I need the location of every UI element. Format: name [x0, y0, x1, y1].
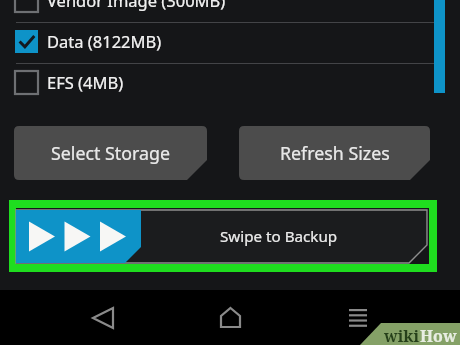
- button[interactable]: Vendor Image (300MB): [0, 0, 460, 20]
- button[interactable]: Swipe to Backup: [16, 210, 427, 263]
- staticText: Vendor Image (300MB): [47, 0, 226, 11]
- staticText: Swipe to Backup: [220, 226, 338, 247]
- button[interactable]: Refresh Sizes: [239, 126, 430, 180]
- staticText: EFS (4MB): [47, 71, 124, 93]
- button[interactable]: Home: [190, 290, 270, 345]
- button[interactable]: Recent apps: [318, 290, 398, 345]
- staticText: Select Storage: [51, 141, 170, 165]
- button[interactable]: Data (8122MB): [0, 21, 460, 61]
- button[interactable]: Back: [63, 290, 143, 345]
- staticText: Refresh Sizes: [280, 141, 390, 165]
- button[interactable]: EFS (4MB): [0, 62, 460, 102]
- staticText: Data (8122MB): [47, 30, 162, 52]
- staticText: How: [420, 325, 457, 345]
- staticText: wiki: [384, 325, 420, 345]
- button[interactable]: Select Storage: [14, 126, 207, 180]
